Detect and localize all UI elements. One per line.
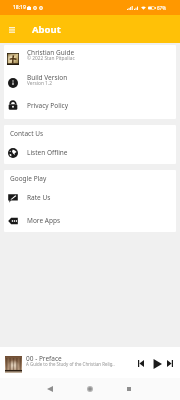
button[interactable]: 00 - Preface bbox=[0, 347, 180, 378]
staticText: © 2022 Stan Pitpaliac bbox=[27, 55, 75, 62]
staticText: Listen Offline bbox=[27, 148, 68, 157]
staticText: Privacy Policy bbox=[27, 101, 69, 110]
button[interactable]: Home bbox=[80, 378, 100, 400]
button[interactable]: Listen Offline bbox=[4, 141, 176, 164]
button[interactable]: Open navigation menu bbox=[0, 15, 23, 43]
button[interactable]: Recents bbox=[119, 378, 139, 400]
button[interactable]: Build Version bbox=[4, 71, 176, 95]
staticText: 18:19 bbox=[13, 4, 26, 11]
staticText: More Apps bbox=[27, 216, 61, 225]
button[interactable]: More Apps bbox=[4, 209, 176, 232]
button[interactable]: Rate Us bbox=[4, 186, 176, 209]
staticText: Build Version bbox=[27, 73, 68, 82]
button[interactable]: Christian Guide bbox=[4, 45, 176, 71]
staticText: Version 1.2 bbox=[27, 80, 52, 87]
staticText: Rate Us bbox=[27, 193, 51, 202]
button[interactable]: Privacy Policy bbox=[4, 95, 176, 119]
staticText: About bbox=[32, 23, 61, 36]
button[interactable]: Next bbox=[163, 356, 176, 371]
staticText: Google Play bbox=[10, 174, 47, 183]
button[interactable]: Back bbox=[40, 378, 60, 400]
staticText: 00 - Preface bbox=[26, 354, 62, 363]
staticText: A Guide to the Study of the Christian Re… bbox=[26, 361, 115, 367]
staticText: Contact Us bbox=[10, 129, 44, 138]
staticText: Christian Guide bbox=[27, 48, 75, 57]
button[interactable]: Play bbox=[150, 355, 165, 372]
button[interactable]: Previous bbox=[134, 356, 147, 371]
staticText: 67% bbox=[157, 5, 166, 11]
